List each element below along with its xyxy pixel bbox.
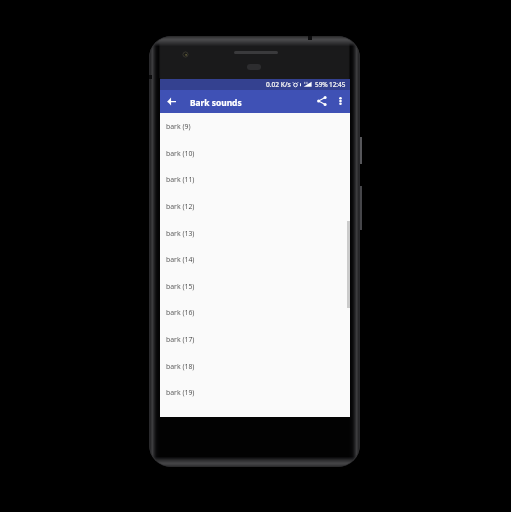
button[interactable]: Navigate up — [160, 90, 182, 113]
button[interactable]: bark (17) — [160, 326, 350, 353]
staticText: bark (10) — [166, 149, 195, 158]
button[interactable]: bark (14) — [160, 246, 350, 273]
button[interactable]: bark (12) — [160, 193, 350, 220]
button[interactable]: bark (16) — [160, 299, 350, 326]
staticText: bark (12) — [166, 202, 195, 211]
staticText: bark (14) — [166, 255, 195, 264]
staticText: bark (18) — [166, 362, 195, 371]
button[interactable]: More options — [332, 90, 350, 113]
button[interactable]: bark (15) — [160, 273, 350, 300]
staticText: 0.02 K/s — [266, 80, 291, 89]
staticText: bark (11) — [166, 175, 195, 184]
button[interactable]: bark (18) — [160, 353, 350, 380]
staticText: 59% — [315, 80, 328, 89]
button[interactable]: bark (11) — [160, 166, 350, 193]
staticText: bark (19) — [166, 388, 195, 397]
staticText: Bark sounds — [190, 97, 242, 108]
staticText: bark (9) — [166, 122, 191, 131]
staticText: bark (16) — [166, 308, 195, 317]
button[interactable]: bark (9) — [160, 113, 350, 140]
staticText: bark (13) — [166, 229, 195, 238]
staticText: bark (17) — [166, 335, 195, 344]
button[interactable]: bark (19) — [160, 379, 350, 406]
button[interactable]: bark (10) — [160, 140, 350, 167]
staticText: bark (15) — [166, 282, 195, 291]
button[interactable]: bark (13) — [160, 220, 350, 247]
staticText: 12:45 — [329, 80, 346, 89]
button[interactable]: Share — [310, 90, 332, 113]
